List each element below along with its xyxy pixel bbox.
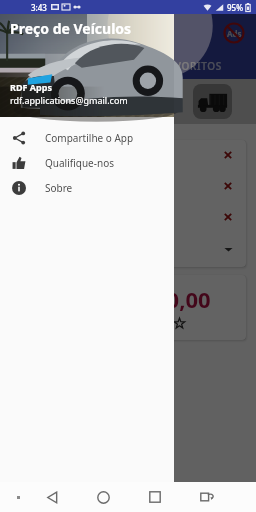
staticText: rdf.applications@gmail.com [10, 94, 128, 106]
button[interactable]: TABELA [0, 52, 128, 79]
button[interactable]: Car category [14, 84, 53, 119]
button[interactable]: Tabela de referência [18, 233, 238, 264]
button[interactable]: Home [91, 485, 115, 509]
staticText: Volkswagen [18, 148, 74, 162]
button[interactable]: Clear Gol 1.0 [218, 176, 238, 196]
staticText: Ads [227, 28, 242, 39]
staticText: FAVORITOS [162, 59, 223, 73]
button[interactable]: Back [40, 485, 64, 509]
staticText: Qualifique-nos [45, 156, 114, 170]
button[interactable]: Qualifique-nos [0, 150, 174, 175]
staticText: Sobre [45, 181, 73, 195]
staticText: 95% [227, 2, 243, 13]
button[interactable]: Screenshot [195, 485, 219, 509]
staticText: R$ 1.165.400,00 [46, 284, 211, 314]
staticText: 3:43 [31, 2, 47, 13]
button[interactable]: Recents [143, 485, 167, 509]
staticText: Preço de Veículos [10, 19, 132, 38]
staticText: RDF Apps [10, 81, 52, 93]
button[interactable]: 2019 Gasolina 75cv [18, 202, 238, 232]
button[interactable]: Remove ads [220, 19, 248, 47]
button[interactable]: Truck category [193, 84, 232, 119]
button[interactable]: Keyboard toggle [13, 492, 23, 502]
staticText: Gol 1.0 [18, 179, 51, 193]
button[interactable]: Compartilhe o App [0, 125, 174, 150]
button[interactable]: Gol 1.0 [18, 171, 238, 201]
button[interactable]: FAVORITOS [128, 52, 256, 79]
button[interactable]: Clear 2019 Gasolina 75cv [218, 207, 238, 227]
button[interactable]: Sobre [0, 175, 174, 200]
button[interactable]: Favorite [169, 313, 189, 333]
button[interactable]: Volkswagen [18, 140, 238, 170]
staticText: Compartilhe o App [45, 131, 134, 145]
staticText: TABELA [44, 59, 84, 73]
button[interactable]: Expand Tabela de referência [218, 239, 238, 259]
button[interactable]: Motorcycle category [104, 84, 143, 119]
button[interactable]: Clear Volkswagen [218, 145, 238, 165]
